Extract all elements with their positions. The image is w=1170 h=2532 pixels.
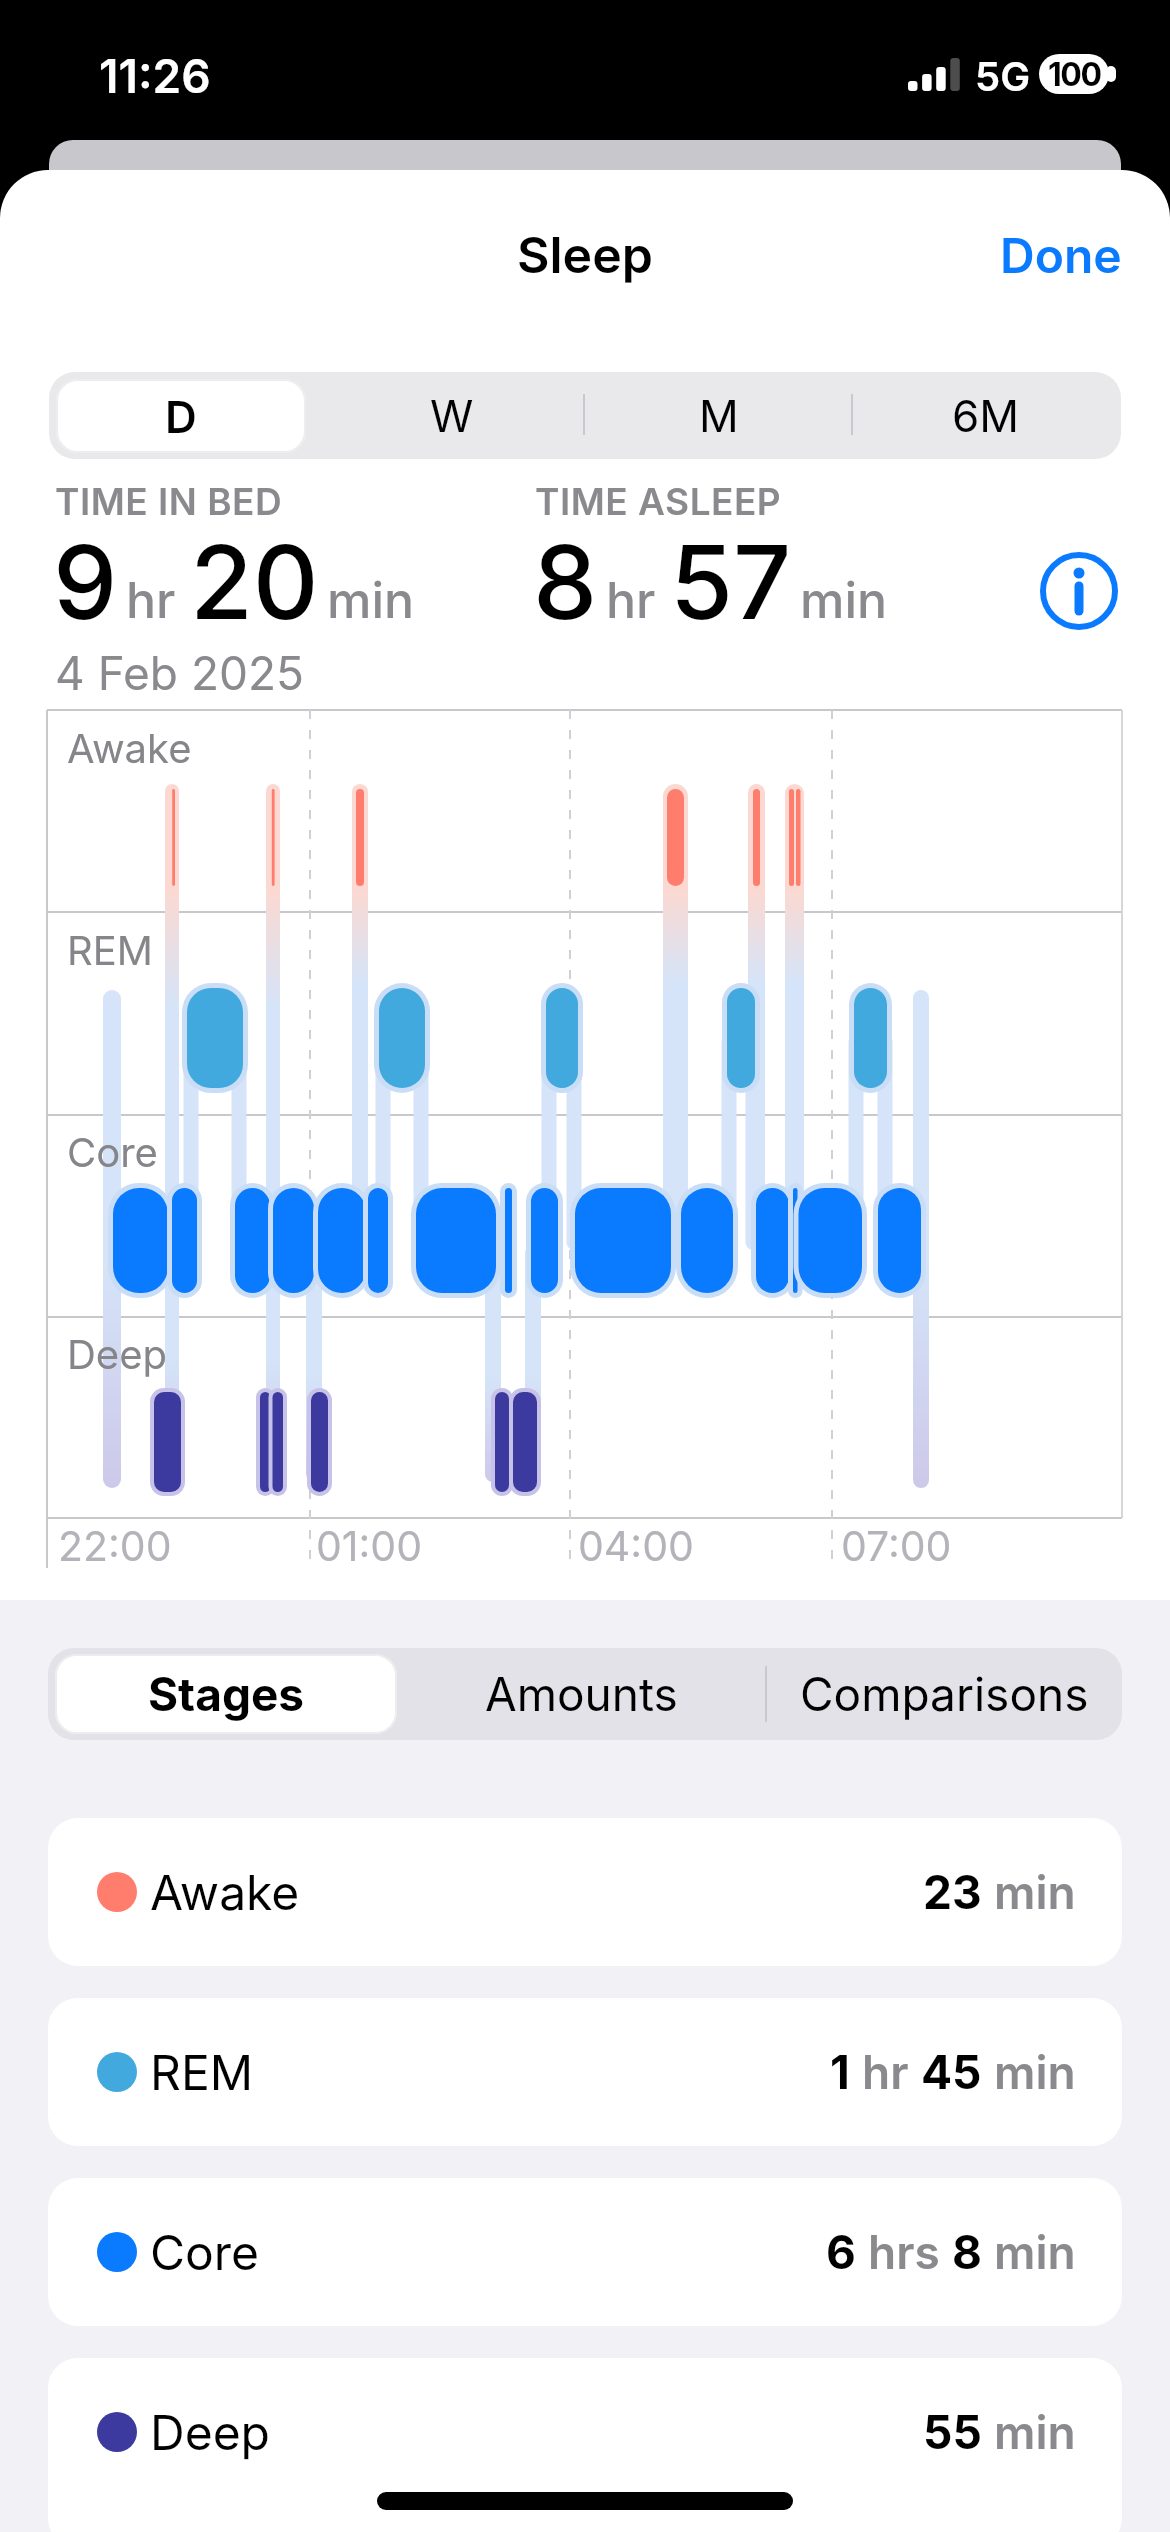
staticText: Amounts bbox=[485, 1666, 678, 1722]
staticText: Comparisons bbox=[800, 1666, 1089, 1722]
staticText: 1 bbox=[830, 2044, 850, 2100]
staticText: Sleep bbox=[517, 225, 653, 285]
staticText: M bbox=[699, 389, 739, 442]
staticText: 23 bbox=[923, 1864, 982, 1920]
staticText: hr bbox=[606, 570, 656, 630]
staticText: min bbox=[800, 570, 888, 630]
staticText: 22:00 bbox=[58, 1521, 172, 1571]
staticText: REM bbox=[67, 926, 153, 974]
staticText: Awake bbox=[150, 1863, 300, 1921]
staticText: Done bbox=[1000, 226, 1122, 284]
staticText: min bbox=[994, 1864, 1076, 1920]
staticText: TIME IN BED bbox=[55, 479, 283, 519]
staticText: 57 bbox=[670, 520, 792, 643]
staticText: 6 bbox=[826, 2224, 856, 2280]
staticText: 01:00 bbox=[316, 1521, 423, 1571]
staticText: Deep bbox=[150, 2403, 270, 2461]
staticText: REM bbox=[150, 2043, 254, 2101]
staticText: W bbox=[430, 389, 474, 442]
staticText: hr bbox=[862, 2044, 909, 2100]
staticText: min bbox=[327, 570, 415, 630]
staticText: 55 bbox=[923, 2404, 982, 2460]
staticText: 20 bbox=[190, 520, 319, 643]
staticText: 11:26 bbox=[99, 48, 211, 104]
staticText: 100 bbox=[1048, 55, 1101, 94]
staticText: 8 bbox=[533, 520, 598, 643]
staticText: Deep bbox=[67, 1330, 167, 1378]
staticText: Core bbox=[67, 1128, 158, 1176]
staticText: 4 Feb 2025 bbox=[55, 645, 305, 697]
staticText: Core bbox=[150, 2223, 260, 2281]
staticText: TIME ASLEEP bbox=[535, 479, 782, 519]
staticText: 04:00 bbox=[578, 1521, 694, 1571]
staticText: 5G bbox=[975, 52, 1031, 100]
staticText: hrs bbox=[868, 2224, 940, 2280]
staticText: Stages bbox=[148, 1666, 305, 1722]
staticText: 9 bbox=[53, 520, 118, 643]
staticText: 07:00 bbox=[841, 1521, 952, 1571]
staticText: 45 bbox=[921, 2044, 982, 2100]
staticText: Awake bbox=[67, 724, 192, 772]
staticText: min bbox=[994, 2044, 1076, 2100]
staticText: min bbox=[994, 2404, 1076, 2460]
staticText: D bbox=[165, 390, 197, 443]
staticText: 6M bbox=[952, 389, 1020, 442]
staticText: min bbox=[994, 2224, 1076, 2280]
staticText: hr bbox=[126, 570, 176, 630]
staticText: 8 bbox=[952, 2224, 982, 2280]
